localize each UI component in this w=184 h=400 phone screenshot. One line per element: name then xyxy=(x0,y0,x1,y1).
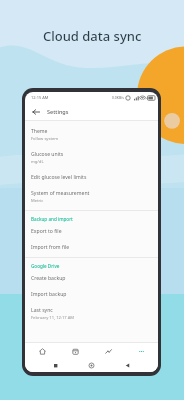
staticText: Google Drive xyxy=(31,263,60,269)
button[interactable]: Home xyxy=(25,343,59,359)
staticText: February 11, 12:17 AM xyxy=(31,315,75,321)
button[interactable]: System of measurement xyxy=(25,185,158,208)
button[interactable]: Calendar xyxy=(59,343,92,359)
staticText: mg/dL xyxy=(31,159,44,165)
staticText: Edit glucose level limits xyxy=(31,174,87,181)
button[interactable]: Back xyxy=(30,106,42,118)
button[interactable]: Theme xyxy=(25,123,158,146)
button[interactable]: Glucose units xyxy=(25,146,158,169)
staticText: Metric xyxy=(31,198,44,204)
button[interactable]: Import backup xyxy=(25,286,158,302)
staticText: Import backup xyxy=(31,291,67,298)
button[interactable]: Export to file xyxy=(25,223,158,239)
button[interactable]: Chart xyxy=(92,343,125,359)
staticText: Follow system xyxy=(31,136,59,142)
staticText: System of measurement xyxy=(31,190,90,197)
staticText: 12:15 AM xyxy=(31,95,49,100)
button[interactable]: More xyxy=(125,343,158,359)
staticText: 0.0KB/s xyxy=(112,95,124,100)
staticText: Theme xyxy=(31,128,48,135)
staticText: Import from file xyxy=(31,244,70,251)
button[interactable]: Edit glucose level limits xyxy=(25,169,158,185)
staticText: Create backup xyxy=(31,275,66,282)
button[interactable]: Create backup xyxy=(25,270,158,286)
staticText: Last sync xyxy=(31,307,53,314)
button[interactable]: Import from file xyxy=(25,239,158,255)
staticText: Export to file xyxy=(31,228,62,235)
staticText: Glucose units xyxy=(31,151,64,158)
staticText: Cloud data sync xyxy=(43,27,142,45)
staticText: Backup and import xyxy=(31,216,73,222)
button[interactable]: Last sync xyxy=(25,302,158,325)
staticText: Settings xyxy=(47,108,69,115)
